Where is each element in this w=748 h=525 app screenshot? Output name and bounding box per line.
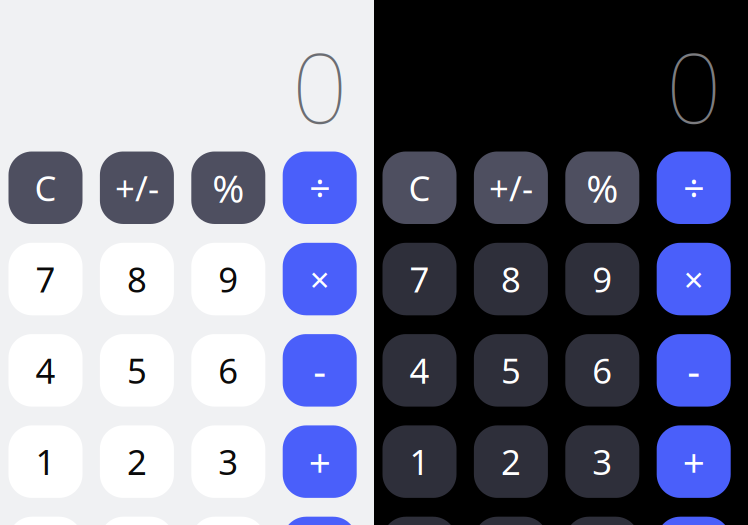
- button[interactable]: Toggle sign: [474, 151, 548, 224]
- staticText: 2: [127, 439, 147, 485]
- staticText: 7: [35, 256, 55, 302]
- button[interactable]: Percent: [191, 151, 265, 224]
- button[interactable]: 7: [382, 243, 456, 315]
- button[interactable]: Add: [283, 425, 357, 498]
- staticText: 5: [501, 347, 521, 393]
- button[interactable]: 9: [191, 243, 265, 315]
- button[interactable]: Toggle sign: [100, 151, 174, 224]
- button[interactable]: 9: [565, 243, 639, 315]
- button[interactable]: Multiply: [657, 243, 731, 315]
- button[interactable]: 0: [8, 517, 82, 525]
- button[interactable]: 8: [474, 243, 548, 315]
- button[interactable]: Equals: [657, 517, 731, 525]
- button[interactable]: 7: [8, 243, 82, 315]
- staticText: +/-: [489, 165, 533, 211]
- staticText: 7: [409, 256, 429, 302]
- button[interactable]: 5: [474, 334, 548, 407]
- button[interactable]: Add: [657, 425, 731, 498]
- button[interactable]: .: [474, 517, 548, 525]
- button[interactable]: Equals: [283, 517, 357, 525]
- button[interactable]: 5: [100, 334, 174, 407]
- button[interactable]: Delete: [191, 517, 265, 525]
- staticText: %: [586, 162, 618, 213]
- button[interactable]: Percent: [565, 151, 639, 224]
- staticText: C: [408, 165, 430, 211]
- button[interactable]: Delete: [565, 517, 639, 525]
- staticText: +: [309, 436, 331, 487]
- button[interactable]: .: [100, 517, 174, 525]
- staticText: 6: [592, 347, 612, 393]
- button[interactable]: 1: [382, 425, 456, 498]
- staticText: ×: [684, 256, 704, 302]
- button[interactable]: 2: [100, 425, 174, 498]
- button[interactable]: 3: [191, 425, 265, 498]
- staticText: ÷: [309, 163, 330, 213]
- staticText: 6: [218, 347, 238, 393]
- staticText: 4: [35, 347, 55, 393]
- staticText: 3: [218, 439, 238, 485]
- button[interactable]: Clear: [382, 151, 456, 224]
- staticText: 9: [592, 256, 612, 302]
- staticText: ÷: [683, 163, 704, 213]
- button[interactable]: 8: [100, 243, 174, 315]
- button[interactable]: 1: [8, 425, 82, 498]
- staticText: %: [212, 162, 244, 213]
- button[interactable]: Subtract: [283, 334, 357, 407]
- staticText: 0: [292, 21, 347, 150]
- button[interactable]: 0: [382, 517, 456, 525]
- staticText: +: [683, 436, 705, 487]
- button[interactable]: 4: [8, 334, 82, 407]
- button[interactable]: Multiply: [283, 243, 357, 315]
- button[interactable]: 6: [565, 334, 639, 407]
- button[interactable]: Divide: [657, 151, 731, 224]
- staticText: -: [687, 344, 700, 397]
- button[interactable]: 6: [191, 334, 265, 407]
- staticText: -: [313, 344, 326, 397]
- staticText: 4: [409, 347, 429, 393]
- staticText: 8: [501, 256, 521, 302]
- button[interactable]: Subtract: [657, 334, 731, 407]
- staticText: ×: [310, 256, 330, 302]
- button[interactable]: 2: [474, 425, 548, 498]
- staticText: C: [34, 165, 56, 211]
- staticText: 2: [501, 439, 521, 485]
- staticText: 1: [35, 439, 55, 485]
- button[interactable]: Clear: [8, 151, 82, 224]
- staticText: 3: [592, 439, 612, 485]
- staticText: 8: [127, 256, 147, 302]
- button[interactable]: 4: [382, 334, 456, 407]
- staticText: +/-: [115, 165, 159, 211]
- staticText: 5: [127, 347, 147, 393]
- staticText: 9: [218, 256, 238, 302]
- button[interactable]: 3: [565, 425, 639, 498]
- staticText: 0: [666, 21, 721, 150]
- staticText: 1: [409, 439, 429, 485]
- button[interactable]: Divide: [283, 151, 357, 224]
